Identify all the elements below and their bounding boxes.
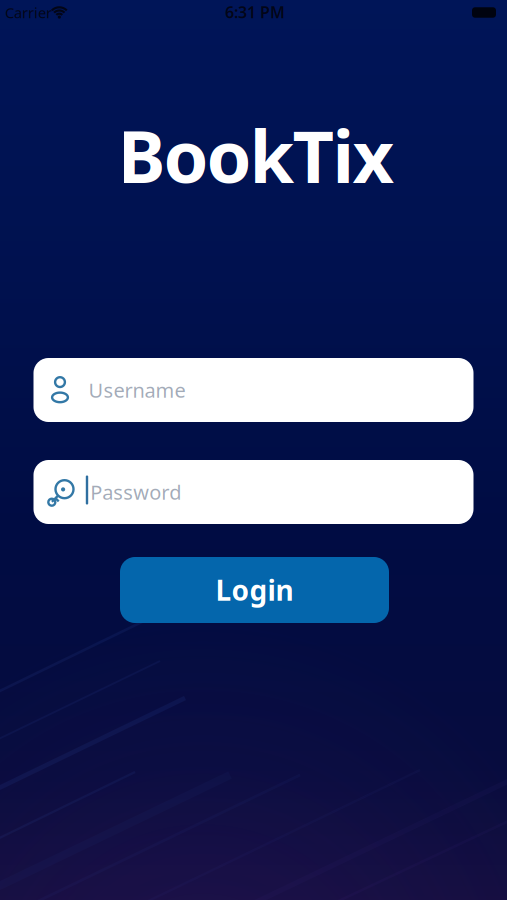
secureTextField[interactable]: Password bbox=[33, 460, 473, 524]
staticText: Username bbox=[88, 377, 185, 403]
button[interactable]: Login bbox=[120, 557, 389, 623]
staticText: Carrier bbox=[5, 3, 52, 22]
textField[interactable]: Username bbox=[33, 358, 473, 422]
staticText: Password bbox=[90, 479, 181, 505]
staticText: BookTix bbox=[117, 107, 394, 203]
staticText: 6:31 PM bbox=[225, 1, 285, 23]
staticText: Login bbox=[215, 571, 293, 609]
